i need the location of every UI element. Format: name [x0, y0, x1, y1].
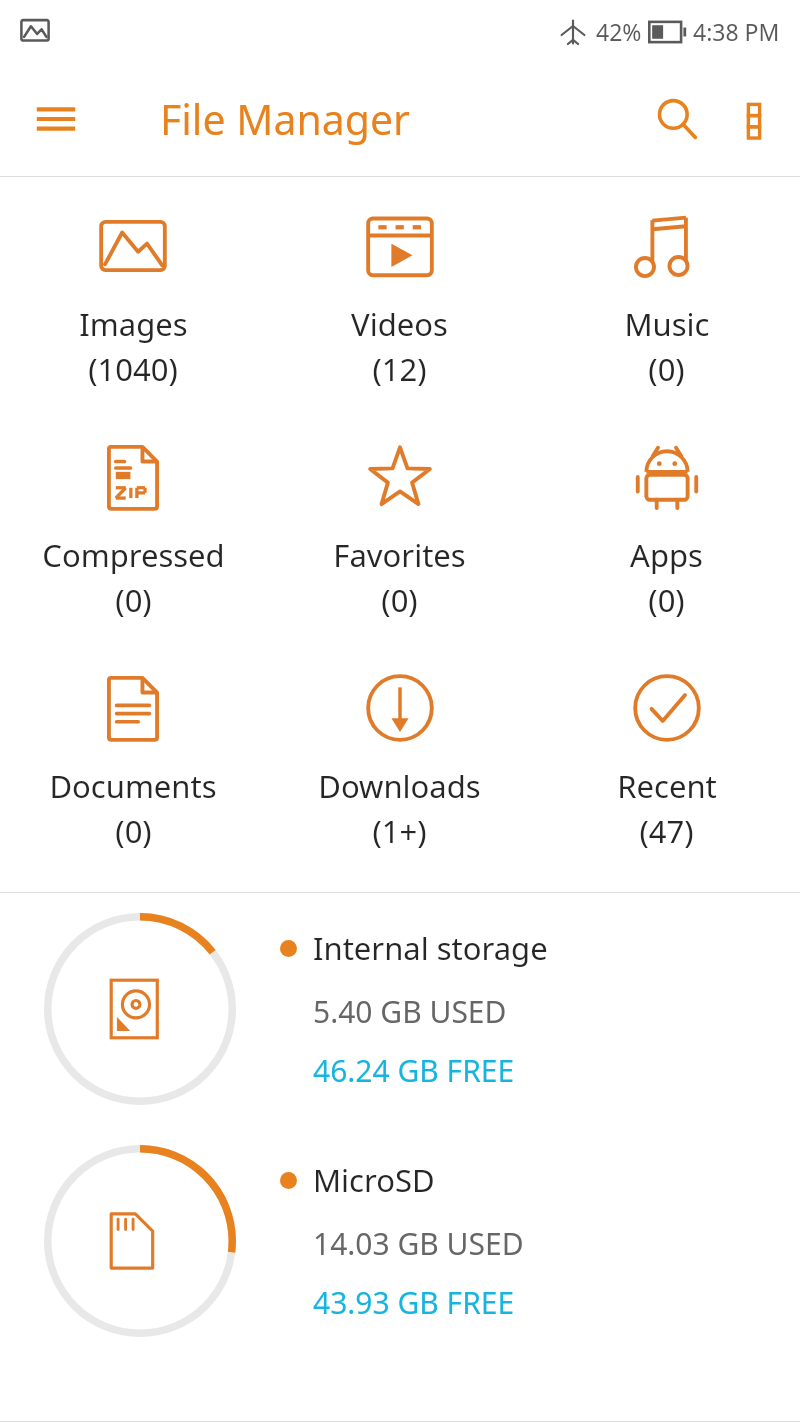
staticText: 14.03 GB USED [313, 1223, 524, 1264]
staticText: (0) [648, 348, 685, 390]
staticText: Downloads [318, 765, 481, 807]
staticText: 42% [596, 16, 642, 47]
staticText: (12) [372, 348, 427, 390]
staticText: Favorites [333, 534, 466, 576]
staticText: Recent [617, 765, 717, 807]
staticText: (1040) [88, 348, 178, 390]
button[interactable]: Music [533, 199, 800, 394]
button[interactable]: Favorites [266, 430, 533, 625]
button[interactable]: Compressed [0, 430, 266, 625]
button[interactable]: Images [0, 199, 266, 394]
staticText: MicroSD [313, 1159, 435, 1201]
staticText: (47) [639, 810, 694, 852]
staticText: 43.93 GB FREE [313, 1282, 515, 1323]
staticText: 5.40 GB USED [313, 991, 507, 1032]
button[interactable]: Search [638, 80, 716, 158]
staticText: (1+) [372, 810, 427, 852]
staticText: (0) [115, 579, 152, 621]
staticText: Videos [351, 303, 448, 345]
staticText: 46.24 GB FREE [313, 1050, 515, 1091]
staticText: Compressed [42, 534, 225, 576]
button[interactable]: MicroSD [0, 1125, 800, 1357]
staticText: (0) [381, 579, 418, 621]
staticText: Images [79, 303, 188, 345]
staticText: File Manager [160, 91, 411, 147]
button[interactable]: Videos [266, 199, 533, 394]
staticText: Documents [49, 765, 217, 807]
button[interactable]: Recent [533, 661, 800, 856]
staticText: (0) [648, 579, 685, 621]
button[interactable]: More options [716, 81, 792, 157]
button[interactable]: Downloads [266, 661, 533, 856]
staticText: Internal storage [313, 927, 548, 969]
button[interactable]: Internal storage [0, 893, 800, 1125]
button[interactable]: Documents [0, 661, 266, 856]
staticText: 4:38 PM [693, 16, 780, 47]
staticText: Apps [630, 534, 703, 576]
staticText: Music [624, 303, 710, 345]
staticText: (0) [115, 810, 152, 852]
button[interactable]: Open navigation menu [20, 83, 92, 155]
button[interactable]: Apps [533, 430, 800, 625]
